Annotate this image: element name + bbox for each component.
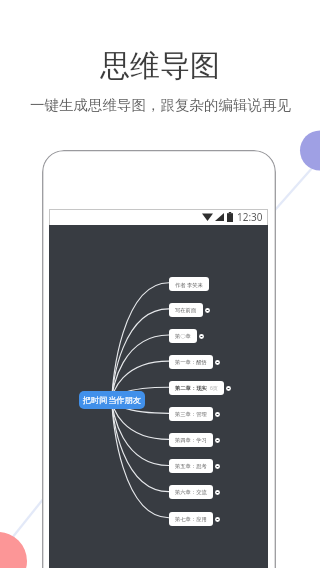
staticText: 作者 李笑来 bbox=[175, 281, 203, 288]
staticText: 第七章：应用 bbox=[175, 516, 207, 523]
button[interactable]: Expand node bbox=[199, 334, 204, 339]
staticText: 把时间当作朋友 bbox=[83, 395, 142, 405]
staticText: 第一章：醒悟 bbox=[175, 359, 207, 366]
staticText: 思维导图 bbox=[100, 47, 220, 85]
staticText: 写在前面 bbox=[175, 307, 197, 314]
staticText: 12:30 bbox=[237, 210, 263, 224]
staticText: 一键生成思维导图，跟复杂的编辑说再见 bbox=[30, 96, 291, 114]
button[interactable]: 第四章：学习 bbox=[169, 433, 213, 447]
button[interactable]: Expand node bbox=[215, 517, 220, 522]
button[interactable]: Expand node bbox=[215, 360, 220, 365]
button[interactable]: Expand node bbox=[215, 438, 220, 443]
staticText: 第〇章 bbox=[175, 333, 191, 340]
button[interactable]: 第二章：现实 bbox=[169, 381, 224, 395]
button[interactable]: 把时间当作朋友 bbox=[79, 391, 145, 409]
button[interactable]: 第六章：交流 bbox=[169, 485, 213, 499]
button[interactable]: 写在前面 bbox=[169, 303, 203, 317]
button[interactable]: Expand node bbox=[215, 464, 220, 469]
button[interactable]: 第五章：思考 bbox=[169, 459, 213, 473]
button[interactable]: Expand node bbox=[215, 490, 220, 495]
button[interactable]: Expand node bbox=[226, 386, 231, 391]
staticText: 第二章：现实 bbox=[175, 385, 207, 392]
button[interactable]: Expand node bbox=[205, 308, 210, 313]
staticText: 第三章：管理 bbox=[175, 411, 207, 418]
staticText: 第四章：学习 bbox=[175, 437, 207, 444]
button[interactable]: 作者 李笑来 bbox=[169, 277, 209, 291]
staticText: 6页 bbox=[210, 385, 218, 392]
button[interactable]: 第三章：管理 bbox=[169, 407, 213, 421]
button[interactable]: Expand node bbox=[215, 412, 220, 417]
staticText: 第六章：交流 bbox=[175, 489, 207, 496]
staticText: 第五章：思考 bbox=[175, 463, 207, 470]
button[interactable]: 第七章：应用 bbox=[169, 512, 213, 526]
button[interactable]: 第一章：醒悟 bbox=[169, 355, 213, 369]
button[interactable]: 第〇章 bbox=[169, 329, 197, 343]
